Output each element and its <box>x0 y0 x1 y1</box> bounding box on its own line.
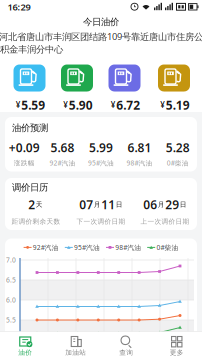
staticText: 11 <box>101 196 115 212</box>
staticText: 29 <box>165 196 179 212</box>
staticText: 日 <box>116 200 123 209</box>
staticText: 5.59 <box>21 97 45 113</box>
staticText: 油价 <box>18 348 32 357</box>
staticText: 油价预测 <box>12 122 48 134</box>
staticText: 98#汽油 <box>115 243 141 252</box>
staticText: 距调价剩余天数 <box>11 217 60 226</box>
button[interactable]: 油价 5.90 <box>61 64 93 91</box>
button[interactable]: 更多 <box>151 331 202 359</box>
button[interactable]: 查询 <box>101 331 151 359</box>
button[interactable]: 油价预测 <box>5 117 197 171</box>
staticText: 7.0 <box>6 256 16 264</box>
staticText: 2 <box>28 196 35 212</box>
staticText: +0.09 <box>9 139 40 155</box>
staticText: 更多 <box>170 348 184 357</box>
staticText: 下一次调价日期 <box>76 217 125 226</box>
staticText: 查询 <box>119 348 133 357</box>
button[interactable]: 加油站 <box>50 331 101 359</box>
staticText: 0#柴油 <box>167 159 189 167</box>
staticText: 5.90 <box>69 97 93 113</box>
staticText: 6.81 <box>127 139 151 155</box>
staticText: ¥ <box>111 100 116 110</box>
staticText: 98#汽油 <box>126 159 152 167</box>
staticText: 河北省唐山市丰润区团结路109号靠近唐山市住房公 <box>0 30 202 43</box>
staticText: 调价日历 <box>12 182 48 193</box>
button[interactable]: 油价 <box>0 331 50 359</box>
staticText: 95#汽油 <box>88 159 114 167</box>
staticText: 月 <box>94 200 101 209</box>
staticText: 日 <box>180 200 187 209</box>
staticText: 0#柴油 <box>156 243 178 252</box>
button[interactable]: 油价 6.72 <box>108 64 140 91</box>
staticText: 5.19 <box>166 97 190 113</box>
staticText: 月 <box>158 200 165 209</box>
staticText: ¥ <box>16 100 21 110</box>
button[interactable]: 油价 5.59 <box>13 64 45 91</box>
staticText: 07 <box>79 196 93 212</box>
button[interactable]: 油价 5.19 <box>158 64 190 91</box>
staticText: 5.5 <box>6 316 16 324</box>
staticText: 积金丰润分中心 <box>0 44 63 55</box>
staticText: 天 <box>36 200 43 209</box>
staticText: 06 <box>143 196 157 212</box>
staticText: 5.99 <box>89 139 113 155</box>
staticText: 今日油价 <box>83 16 119 28</box>
staticText: 加油站 <box>65 348 86 357</box>
staticText: 92#汽油 <box>50 159 76 167</box>
staticText: 上一次调价日期 <box>140 217 189 226</box>
staticText: ¥ <box>63 100 68 110</box>
staticText: 92#汽油 <box>33 243 59 252</box>
staticText: 6.0 <box>6 296 16 304</box>
staticText: 6.5 <box>6 276 16 284</box>
staticText: 16:29 <box>7 1 30 13</box>
staticText: 5.28 <box>166 139 190 155</box>
staticText: ¥ <box>160 100 165 110</box>
staticText: 6.72 <box>116 97 140 113</box>
staticText: 95#汽油 <box>74 243 100 252</box>
button[interactable]: 调价日历 <box>5 178 197 230</box>
staticText: 涨跌幅 <box>14 159 35 167</box>
staticText: 5.68 <box>51 139 75 155</box>
